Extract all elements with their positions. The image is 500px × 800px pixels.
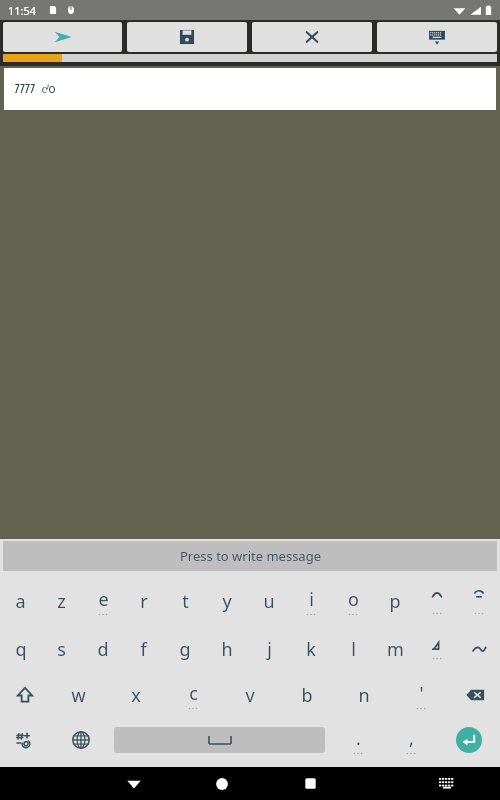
button[interactable]: l — [332, 625, 374, 673]
staticText: Press to write message — [180, 547, 321, 565]
staticText: o — [348, 587, 359, 612]
button[interactable]: t — [164, 577, 206, 625]
button[interactable]: Accent — [416, 577, 458, 625]
button[interactable]: r — [123, 577, 164, 625]
button[interactable]: Language — [54, 717, 108, 763]
button[interactable]: Space — [114, 727, 325, 753]
staticText: q — [15, 637, 27, 662]
staticText: t — [182, 589, 189, 614]
staticText: 11:54 — [8, 3, 37, 18]
button[interactable]: Shift — [0, 673, 50, 717]
staticText: c — [189, 681, 198, 706]
button[interactable]: f — [123, 625, 164, 673]
button[interactable]: i — [290, 577, 332, 625]
button[interactable]: h — [206, 625, 248, 673]
staticText: s — [57, 637, 66, 662]
button[interactable]: Press to write message — [3, 541, 497, 571]
button[interactable]: Back — [89, 767, 178, 800]
staticText: k — [306, 637, 316, 662]
button[interactable]: a — [0, 577, 41, 625]
staticText: e — [98, 587, 109, 612]
button[interactable]: g — [164, 625, 206, 673]
staticText: n — [358, 683, 370, 708]
button[interactable]: q — [0, 625, 41, 673]
staticText: i — [309, 587, 314, 612]
button[interactable]: Enter — [437, 717, 500, 763]
button[interactable]: Home — [178, 767, 266, 800]
button[interactable]: Switch keyboard — [407, 767, 487, 800]
staticText: ' — [419, 681, 424, 706]
button[interactable]: Accent — [458, 577, 500, 625]
staticText: z — [57, 589, 66, 614]
button[interactable]: v — [221, 673, 278, 717]
staticText: . — [356, 726, 361, 751]
staticText: d — [97, 637, 109, 662]
button[interactable]: , — [384, 717, 437, 763]
button[interactable]: k — [290, 625, 332, 673]
staticText: v — [245, 683, 255, 708]
button[interactable]: Close — [252, 22, 372, 52]
button[interactable]: x — [107, 673, 164, 717]
button[interactable]: . — [331, 717, 384, 763]
staticText: j — [267, 637, 272, 662]
button[interactable]: j — [248, 625, 290, 673]
button[interactable]: b — [278, 673, 335, 717]
button[interactable]: Backspace — [449, 673, 500, 717]
staticText: x — [131, 683, 141, 708]
button[interactable]: y — [206, 577, 248, 625]
staticText: u — [263, 589, 275, 614]
button[interactable]: m — [374, 625, 416, 673]
staticText: m — [387, 637, 404, 662]
button[interactable]: w — [50, 673, 107, 717]
button[interactable]: ᮊᮊ ᧚ᩅ — [4, 68, 496, 110]
staticText: r — [140, 589, 148, 614]
staticText: y — [222, 589, 232, 614]
button[interactable]: n — [335, 673, 392, 717]
staticText: ᮊᮊ ᧚ᩅ — [14, 79, 57, 100]
staticText: a — [15, 589, 26, 614]
button[interactable]: Send — [3, 22, 122, 52]
button[interactable]: Keyboard — [377, 22, 497, 52]
staticText: w — [71, 683, 86, 708]
button[interactable]: ' — [392, 673, 449, 717]
staticText: f — [140, 637, 147, 662]
button[interactable]: p — [374, 577, 416, 625]
button[interactable]: Symbol — [416, 625, 458, 673]
staticText: p — [389, 589, 401, 614]
button[interactable]: d — [82, 625, 123, 673]
button[interactable]: e — [82, 577, 123, 625]
button[interactable]: c — [164, 673, 221, 717]
button[interactable]: o — [332, 577, 374, 625]
staticText: b — [301, 683, 313, 708]
button[interactable]: s — [41, 625, 82, 673]
button[interactable]: Recents — [266, 767, 354, 800]
button[interactable]: u — [248, 577, 290, 625]
staticText: h — [221, 637, 233, 662]
button[interactable]: Symbols — [0, 717, 54, 763]
button[interactable]: Symbol — [458, 625, 500, 673]
staticText: , — [409, 726, 414, 751]
button[interactable]: Save — [127, 22, 247, 52]
staticText: l — [351, 637, 356, 662]
staticText: g — [179, 637, 191, 662]
button[interactable]: z — [41, 577, 82, 625]
